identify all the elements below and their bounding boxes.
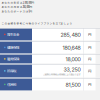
staticText: 81,500 (65, 82, 80, 88)
staticText: 円 (88, 56, 91, 61)
staticText: あなたのボーナスは0円 (1, 9, 32, 13)
staticText: 厚生年金 (7, 32, 19, 37)
staticText: 円 (88, 68, 91, 73)
staticText: 円 (88, 45, 91, 50)
staticText: 285,480 (60, 32, 80, 38)
staticText: 所得税 (7, 68, 16, 73)
staticText: 33,250 (63, 66, 80, 73)
button[interactable]: 住民税 (0, 78, 100, 90)
staticText: 180,648 (62, 45, 80, 51)
staticText: ※実際の所得税は控除額により異なります (42, 73, 80, 76)
staticText: 住民税 (7, 82, 16, 87)
button[interactable]: 所得税 (0, 64, 100, 77)
staticText: 円 (88, 32, 91, 37)
button[interactable]: 健康保険 (0, 41, 100, 53)
staticText: 18,000 (65, 56, 80, 63)
button[interactable]: 厚生年金 (0, 28, 100, 40)
button[interactable]: 雇用保険 (0, 54, 100, 63)
staticText: 雇用保険 (7, 56, 19, 61)
staticText: 健康保険 (7, 45, 19, 50)
staticText: 円 (88, 82, 91, 87)
staticText: あなたの月収は250,000円 (1, 5, 32, 9)
staticText: この金額を参考に今後のライフプランを立てましょう (1, 21, 72, 25)
staticText: あなたの年収は2,000,000円 (1, 1, 34, 5)
